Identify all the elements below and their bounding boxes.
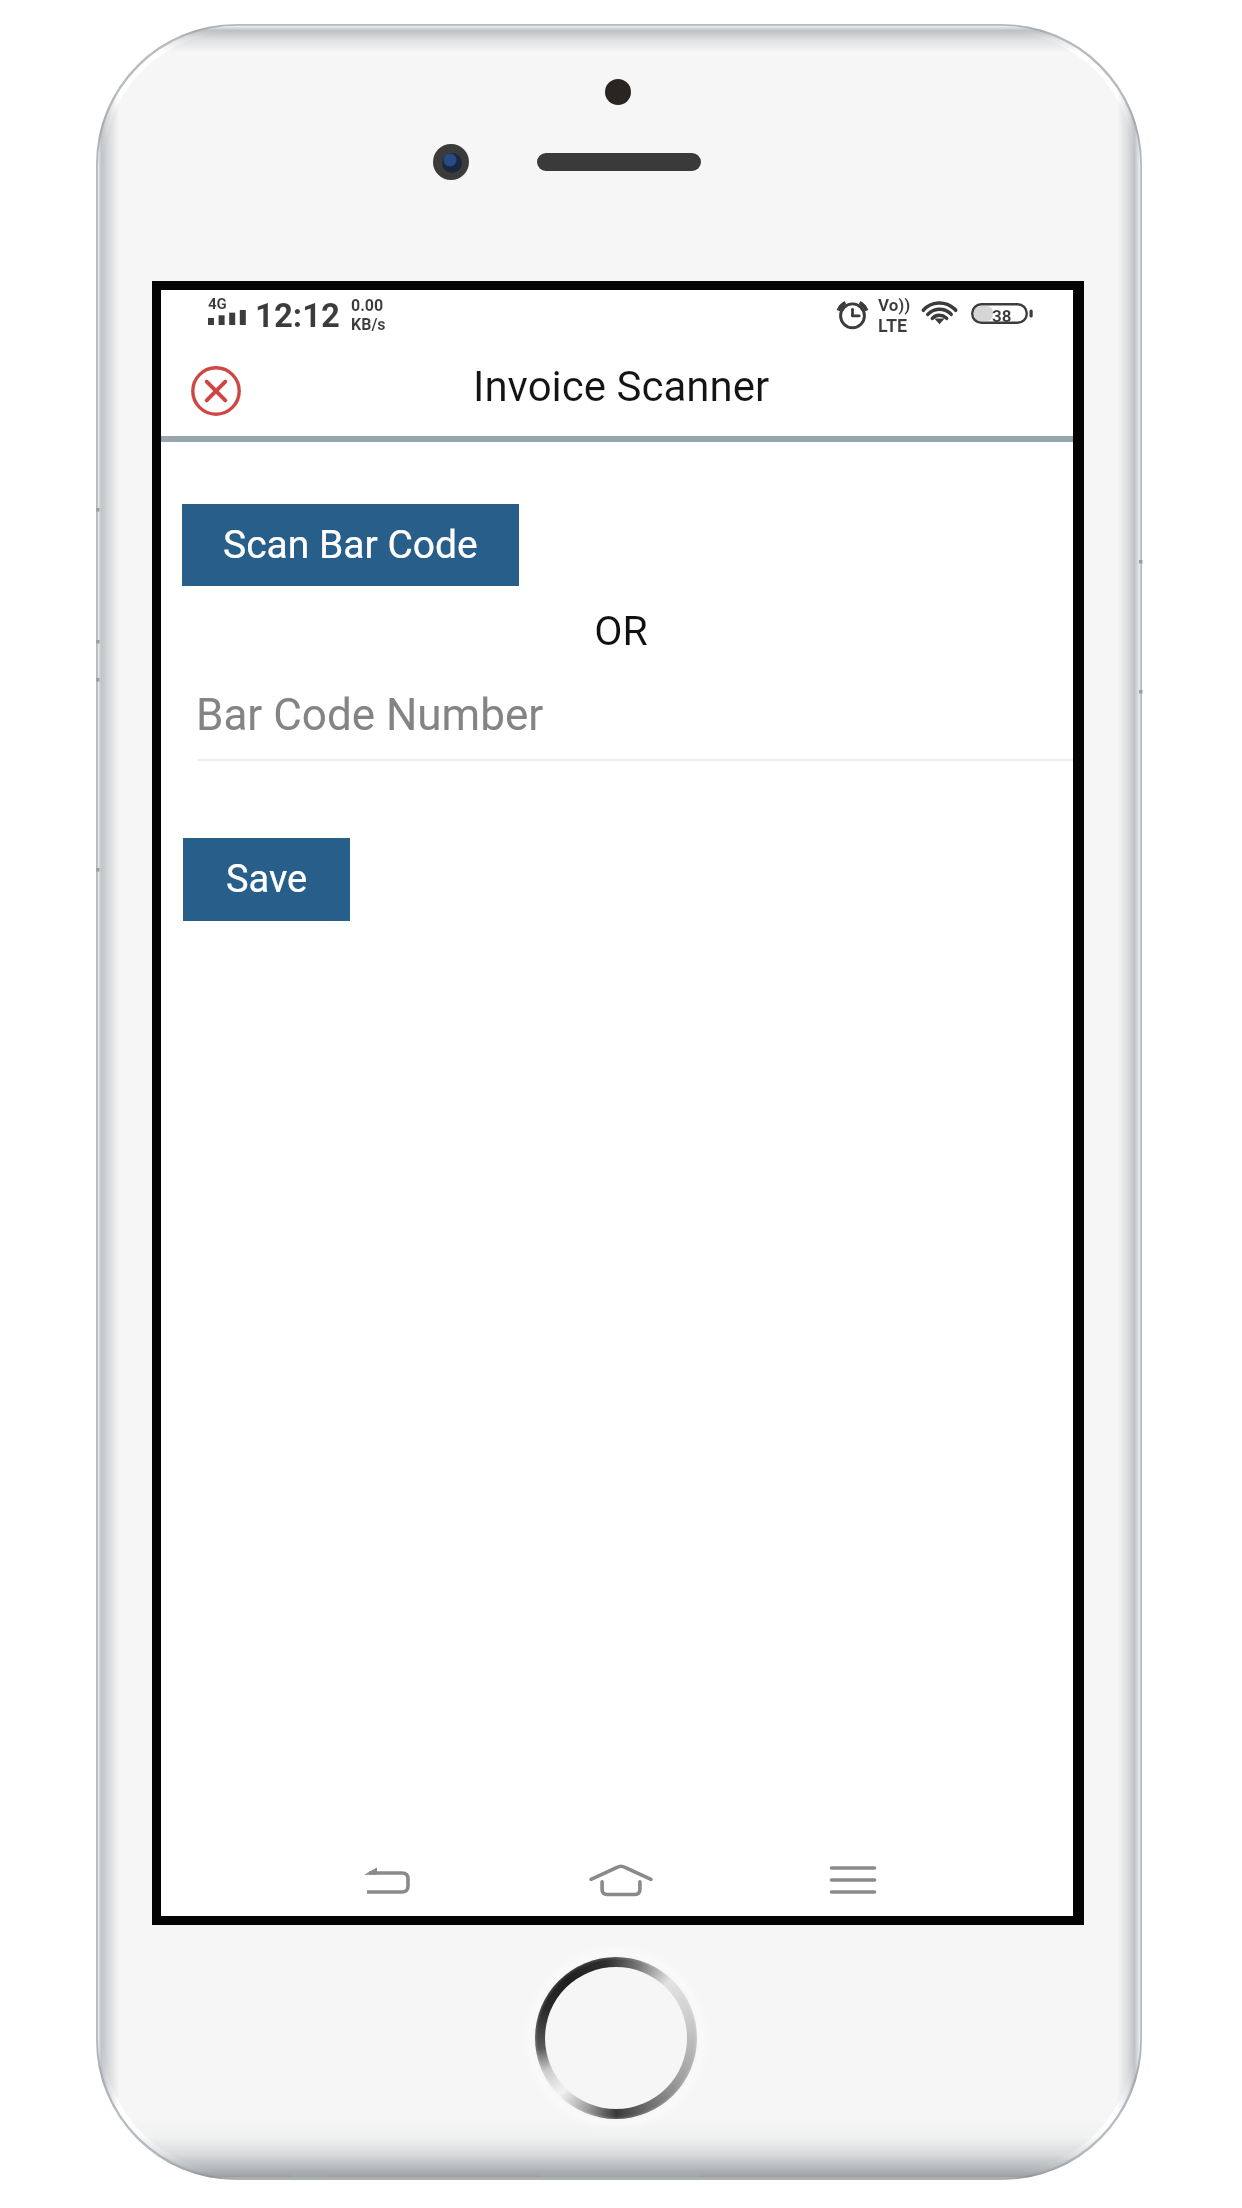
button[interactable]: Home: [541, 1830, 701, 1930]
button[interactable]: Close: [186, 361, 246, 421]
staticText: 38: [992, 306, 1012, 326]
staticText: Scan Bar Code: [223, 522, 478, 568]
button[interactable]: Back: [307, 1830, 467, 1930]
button[interactable]: Save: [183, 838, 350, 921]
staticText: Vo)): [878, 295, 911, 315]
staticText: Bar Code Number: [196, 689, 544, 741]
button[interactable]: Bar Code Number: [198, 673, 1073, 761]
staticText: 12:12: [255, 296, 341, 335]
staticText: OR: [165, 607, 1077, 655]
staticText: 0.00: [351, 296, 384, 315]
button[interactable]: Menu: [773, 1830, 933, 1930]
staticText: Invoice Scanner: [473, 362, 770, 411]
button[interactable]: Scan Bar Code: [182, 504, 519, 586]
staticText: 4G: [208, 295, 227, 313]
staticText: LTE: [878, 315, 908, 336]
staticText: Save: [226, 857, 308, 902]
staticText: KB/s: [351, 315, 386, 334]
